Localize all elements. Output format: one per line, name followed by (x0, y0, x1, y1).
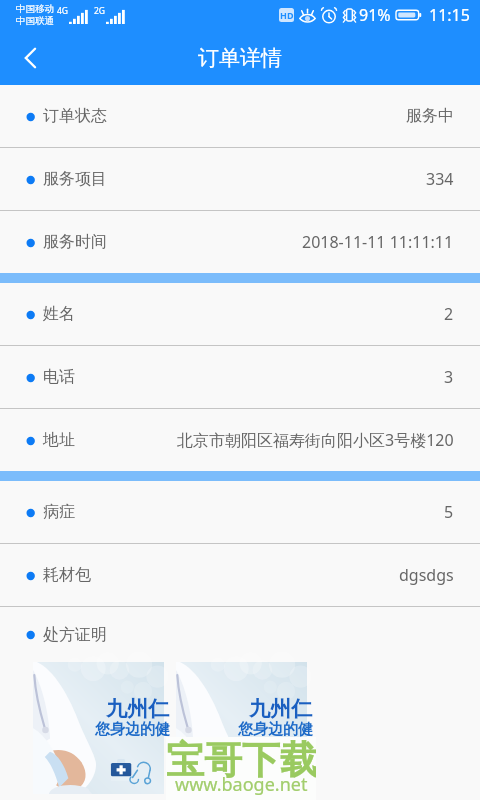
staticText: 中国联通 (16, 15, 54, 27)
button[interactable]: 电话 (0, 346, 480, 408)
staticText: 服务项目 (43, 169, 107, 189)
staticText: 2G (94, 5, 106, 17)
button[interactable]: 姓名 (0, 283, 480, 345)
staticText: 5 (444, 501, 454, 523)
staticText: 11:15 (429, 4, 470, 26)
staticText: 地址 (43, 430, 75, 450)
staticText: 3 (444, 366, 454, 388)
staticText: 电话 (43, 367, 75, 387)
staticText: 91% (359, 4, 391, 26)
staticText: 您身边的健 (238, 720, 313, 739)
staticText: 九州仁 (106, 696, 169, 722)
staticText: 九州仁 (249, 696, 312, 722)
button[interactable]: 订单状态 (0, 85, 480, 147)
staticText: 姓名 (43, 304, 75, 324)
staticText: 病症 (43, 502, 75, 522)
staticText: 处方证明 (43, 625, 107, 645)
button[interactable]: 处方证明 (0, 607, 480, 662)
button[interactable]: 服务时间 (0, 211, 480, 273)
button[interactable]: 病症 (0, 481, 480, 543)
staticText: 服务时间 (43, 232, 107, 252)
button[interactable]: 服务项目 (0, 148, 480, 210)
staticText: dgsdgs (399, 564, 454, 586)
staticText: 中国移动 (16, 3, 54, 15)
staticText: 4G (57, 5, 69, 17)
button[interactable]: 地址 (0, 409, 480, 471)
button[interactable]: Prescription image (176, 662, 307, 794)
staticText: 服务中 (406, 106, 454, 126)
staticText: 宝哥下载 (166, 736, 316, 784)
staticText: 订单详情 (198, 45, 282, 71)
staticText: 耗材包 (43, 565, 91, 585)
button[interactable]: Back (0, 30, 60, 85)
staticText: 您身边的健 (95, 720, 170, 739)
staticText: 2018-11-11 11:11:11 (302, 231, 454, 253)
button[interactable]: 耗材包 (0, 544, 480, 606)
staticText: 订单状态 (43, 106, 107, 126)
staticText: HD (280, 9, 294, 21)
staticText: www.baoge.net (175, 772, 308, 797)
staticText: 北京市朝阳区福寿街向阳小区3号楼120 (177, 429, 454, 451)
staticText: 334 (426, 168, 454, 190)
button[interactable]: Prescription image (33, 662, 164, 794)
staticText: 2 (444, 303, 454, 325)
